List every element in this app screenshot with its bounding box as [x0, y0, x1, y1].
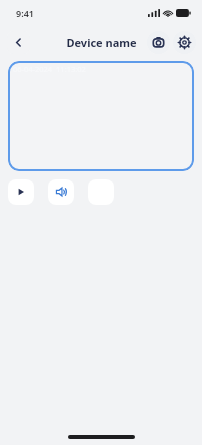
staticText: 06-04-2024 11:13:02: [13, 64, 86, 74]
button[interactable]: Settings: [173, 31, 196, 54]
button[interactable]: Volume: [48, 179, 74, 205]
button[interactable]: 06-04-2024 11:13:02: [8, 61, 194, 171]
button[interactable]: Camera: [147, 31, 170, 54]
staticText: 9:41: [16, 7, 34, 19]
staticText: Device name: [66, 35, 137, 50]
button[interactable]: Back: [7, 31, 30, 54]
button[interactable]: More: [88, 179, 114, 205]
button[interactable]: Play: [8, 179, 34, 205]
